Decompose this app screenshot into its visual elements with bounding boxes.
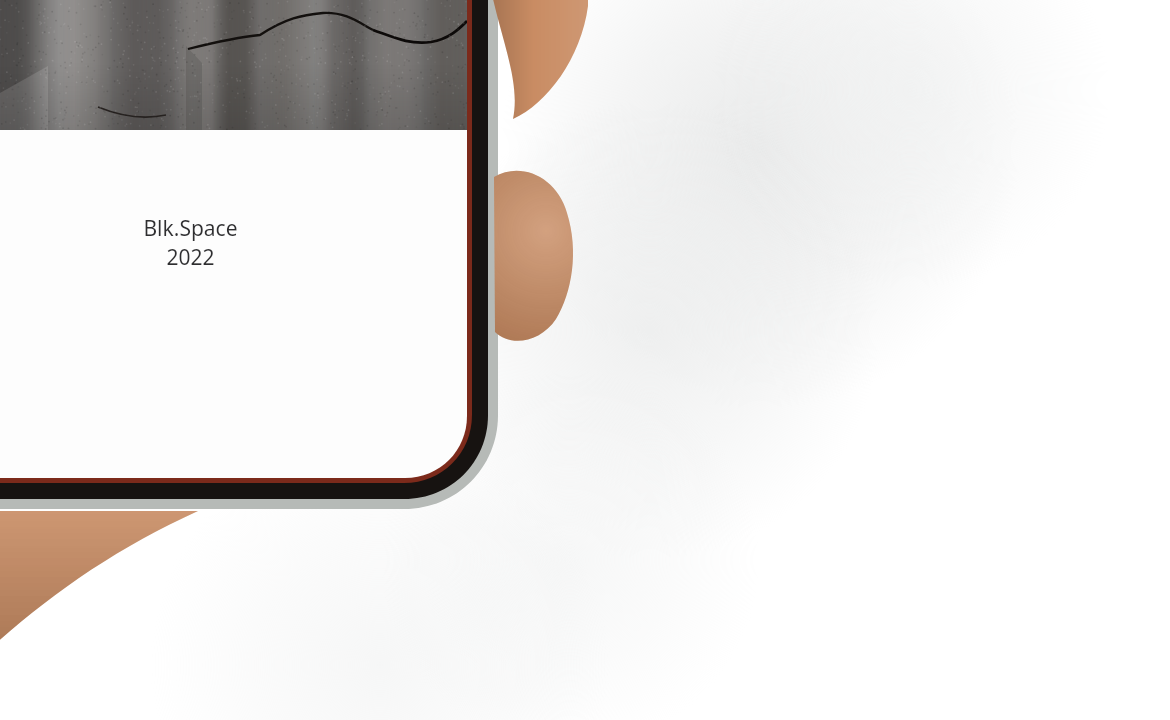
staticText: 2022 [166, 243, 215, 272]
button[interactable]: Blk.Space 2022 [110, 214, 270, 272]
staticText: Blk.Space [143, 214, 238, 243]
